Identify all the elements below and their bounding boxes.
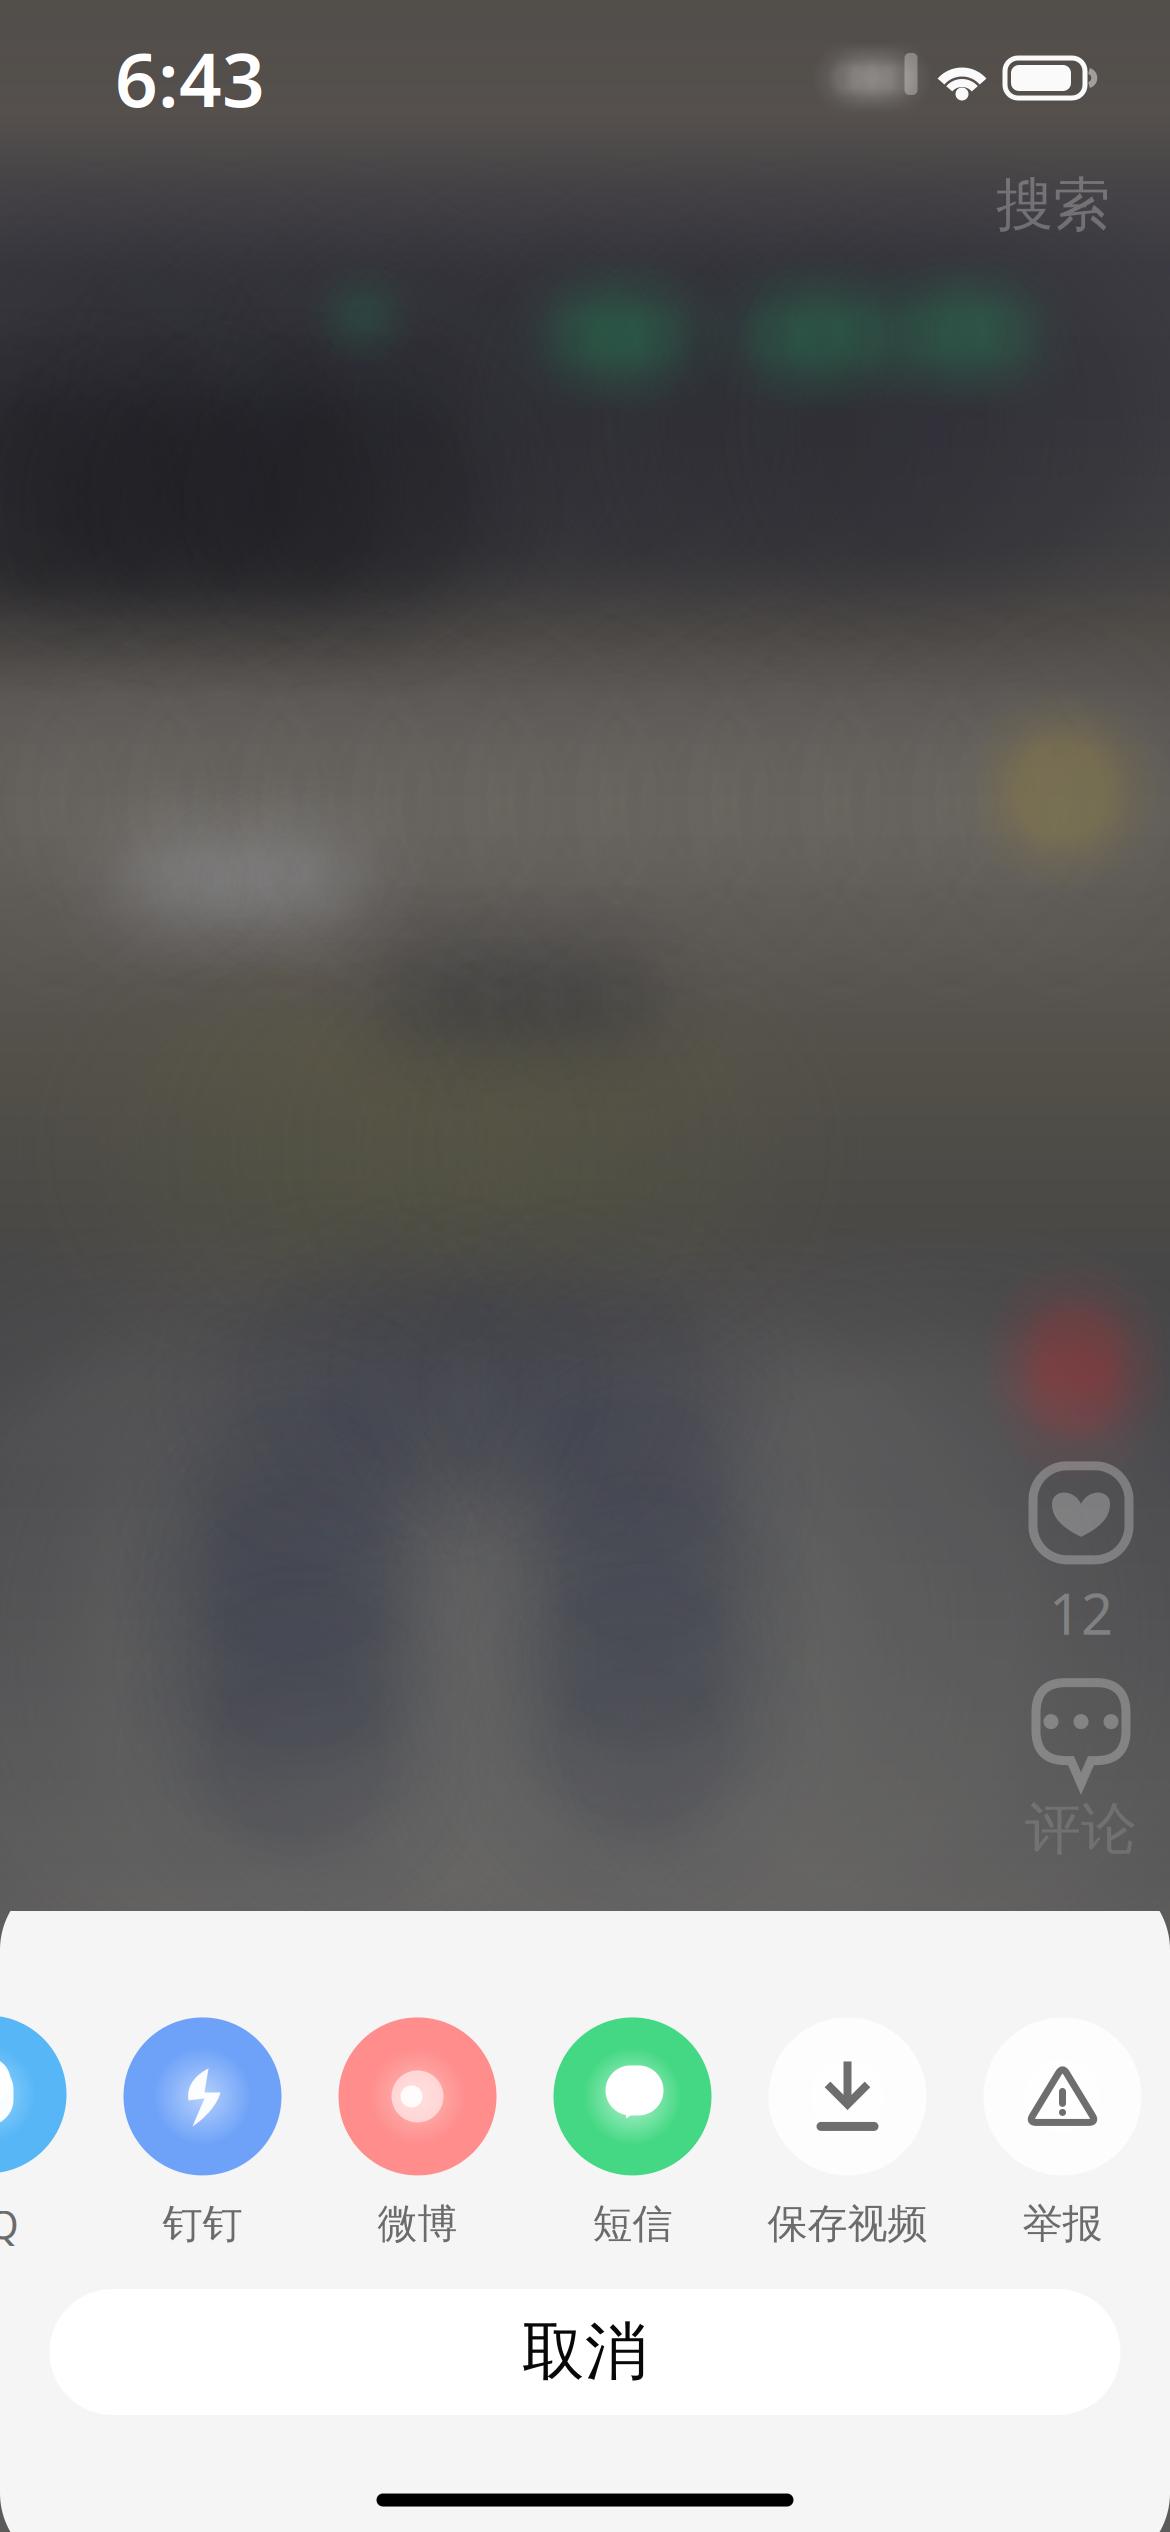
staticText: QQ — [0, 2197, 18, 2250]
staticText: 保存视频 — [767, 2199, 927, 2248]
staticText: 微博 — [377, 2199, 457, 2248]
button[interactable]: 取消 — [49, 2289, 1120, 2415]
staticText: 钉钉 — [162, 2199, 242, 2248]
staticText: 举报 — [1022, 2199, 1102, 2248]
staticText: 12 — [1049, 1576, 1113, 1650]
staticText: 评论 — [1025, 1795, 1137, 1863]
button[interactable]: 微博 — [310, 2016, 525, 2250]
staticText: 取消 — [522, 2313, 648, 2390]
staticText: 短信 — [592, 2199, 672, 2248]
button[interactable]: 短信 — [525, 2016, 740, 2250]
staticText: 搜索 — [996, 170, 1110, 240]
button[interactable]: QQ — [0, 2016, 95, 2250]
button[interactable]: 举报 — [955, 2016, 1170, 2250]
button[interactable]: Like — [1031, 1464, 1131, 1650]
staticText: 6:43 — [115, 28, 265, 128]
button[interactable]: Comments — [1025, 1677, 1137, 1863]
button[interactable]: 保存视频 — [740, 2016, 955, 2250]
button[interactable]: 钉钉 — [95, 2016, 310, 2250]
button[interactable]: 搜索 — [974, 154, 1132, 256]
